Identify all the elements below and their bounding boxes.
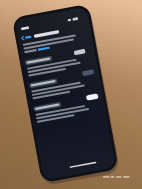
- button[interactable]: Phone showing a privacy settings screen: [0, 0, 142, 189]
